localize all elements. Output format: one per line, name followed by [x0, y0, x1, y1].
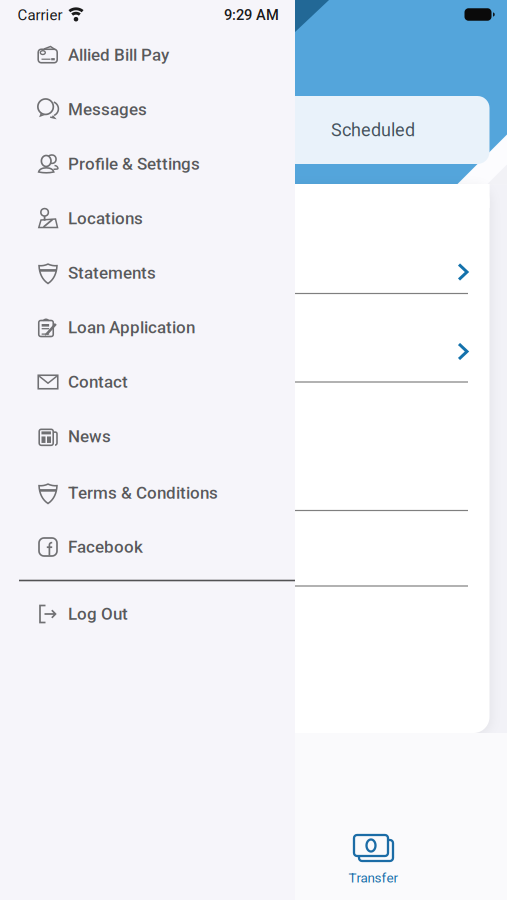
button[interactable]: Allied Bill Pay: [0, 28, 295, 82]
staticText: News: [68, 426, 111, 446]
staticText: Contact: [68, 372, 128, 392]
button[interactable]: Loan Application: [0, 300, 295, 354]
staticText: Facebook: [68, 537, 143, 557]
staticText: Terms & Conditions: [68, 483, 218, 503]
button[interactable]: Log Out: [0, 587, 295, 641]
staticText: Profile & Settings: [68, 154, 200, 174]
staticText: Messages: [68, 99, 147, 119]
staticText: Log Out: [68, 604, 128, 624]
staticText: Allied Bill Pay: [68, 45, 169, 65]
button[interactable]: Scheduled: [273, 96, 473, 164]
staticText: Statements: [68, 263, 156, 283]
staticText: Locations: [68, 208, 143, 228]
button[interactable]: Statements: [0, 246, 295, 300]
staticText: Scheduled: [331, 119, 415, 141]
button[interactable]: Messages: [0, 82, 295, 136]
button[interactable]: To account: [39, 294, 468, 381]
staticText: Transfer: [348, 870, 398, 886]
staticText: Carrier: [17, 6, 62, 24]
button[interactable]: Contact: [0, 355, 295, 409]
button[interactable]: One Time: [35, 96, 235, 164]
button[interactable]: Terms & Conditions: [0, 466, 295, 520]
staticText: 9:29 AM: [224, 6, 279, 24]
button[interactable]: Facebook: [0, 520, 295, 574]
button[interactable]: News: [0, 409, 295, 463]
button[interactable]: Profile & Settings: [0, 137, 295, 191]
staticText: Loan Application: [68, 317, 195, 337]
button[interactable]: Transfer: [338, 824, 408, 890]
button[interactable]: Locations: [0, 191, 295, 245]
button[interactable]: From account: [39, 207, 468, 293]
